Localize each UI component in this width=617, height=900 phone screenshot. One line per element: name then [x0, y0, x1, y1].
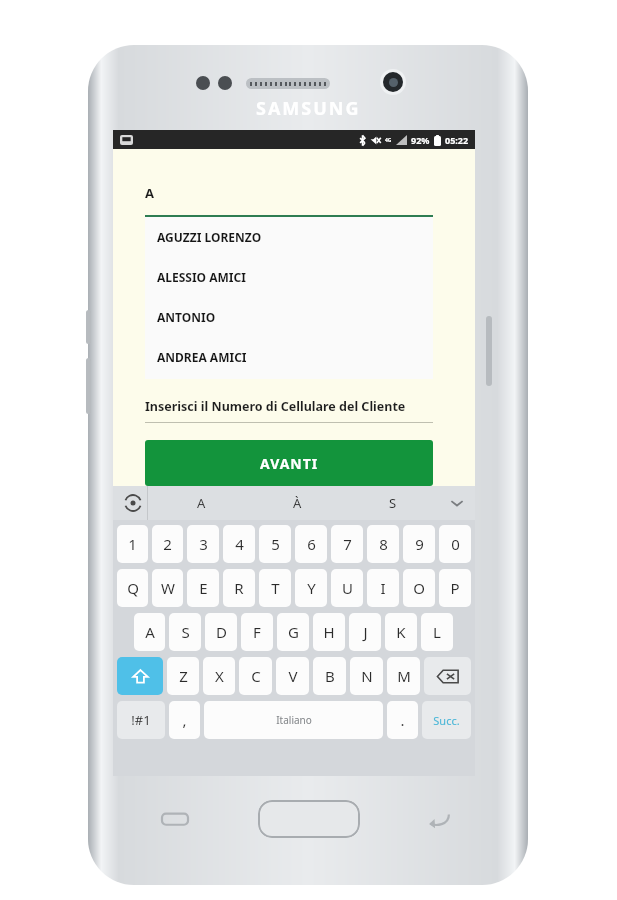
- button[interactable]: 9: [403, 525, 435, 563]
- staticText: ,: [182, 710, 187, 730]
- button[interactable]: 2: [152, 525, 183, 563]
- staticText: !#1: [131, 711, 151, 729]
- staticText: Z: [179, 666, 188, 686]
- button[interactable]: S: [169, 613, 201, 651]
- button[interactable]: Back: [428, 808, 450, 830]
- staticText: P: [450, 578, 460, 598]
- staticText: ALESSIO AMICI: [157, 269, 246, 285]
- button[interactable]: 0: [439, 525, 471, 563]
- button[interactable]: AVANTI: [145, 440, 433, 486]
- staticText: X: [215, 666, 224, 686]
- button[interactable]: B: [313, 657, 346, 695]
- staticText: ANTONIO: [157, 309, 216, 325]
- button[interactable]: Expand suggestions: [449, 495, 465, 511]
- button[interactable]: 5: [259, 525, 291, 563]
- staticText: Y: [307, 578, 316, 598]
- staticText: I: [380, 578, 386, 598]
- staticText: E: [199, 578, 208, 598]
- button[interactable]: H: [313, 613, 345, 651]
- button[interactable]: T: [259, 569, 291, 607]
- button[interactable]: !#1: [117, 701, 165, 739]
- staticText: 0: [451, 534, 460, 554]
- staticText: R: [234, 578, 244, 598]
- button[interactable]: Shift: [117, 657, 163, 695]
- button[interactable]: G: [277, 613, 309, 651]
- button[interactable]: Y: [295, 569, 327, 607]
- staticText: H: [323, 622, 335, 642]
- staticText: B: [325, 666, 335, 686]
- staticText: Succ.: [433, 713, 460, 728]
- button[interactable]: S: [345, 486, 441, 520]
- button[interactable]: F: [241, 613, 273, 651]
- button[interactable]: Z: [167, 657, 199, 695]
- button[interactable]: L: [421, 613, 453, 651]
- button[interactable]: J: [349, 613, 381, 651]
- button[interactable]: ANTONIO: [145, 297, 433, 337]
- staticText: 7: [343, 534, 352, 554]
- button[interactable]: 6: [295, 525, 327, 563]
- button[interactable]: À: [249, 486, 345, 520]
- button[interactable]: M: [387, 657, 420, 695]
- staticText: AGUZZI LORENZO: [157, 229, 262, 245]
- button[interactable]: 7: [331, 525, 363, 563]
- staticText: T: [271, 578, 280, 598]
- staticText: Q: [127, 578, 139, 598]
- button[interactable]: A: [153, 486, 249, 520]
- staticText: 05:22: [445, 134, 469, 146]
- button[interactable]: W: [152, 569, 183, 607]
- button[interactable]: Recents: [162, 810, 188, 828]
- button[interactable]: 8: [367, 525, 399, 563]
- staticText: À: [293, 494, 302, 512]
- staticText: N: [361, 666, 373, 686]
- button[interactable]: ALESSIO AMICI: [145, 257, 433, 297]
- button[interactable]: I: [367, 569, 399, 607]
- staticText: .: [400, 710, 405, 730]
- button[interactable]: O: [403, 569, 435, 607]
- button[interactable]: E: [187, 569, 219, 607]
- staticText: L: [433, 622, 441, 642]
- staticText: J: [363, 622, 368, 642]
- staticText: S: [181, 622, 190, 642]
- button[interactable]: Voice input: [123, 493, 143, 513]
- staticText: 4: [235, 534, 244, 554]
- staticText: F: [253, 622, 261, 642]
- button[interactable]: Q: [117, 569, 148, 607]
- staticText: 5: [271, 534, 280, 554]
- button[interactable]: ,: [169, 701, 200, 739]
- staticText: 92%: [411, 134, 430, 146]
- button[interactable]: Succ.: [422, 701, 471, 739]
- button[interactable]: 4: [223, 525, 255, 563]
- button[interactable]: U: [331, 569, 363, 607]
- button[interactable]: 1: [117, 525, 148, 563]
- staticText: U: [342, 578, 353, 598]
- button[interactable]: .: [387, 701, 418, 739]
- staticText: V: [288, 666, 298, 686]
- staticText: Inserisci il Numero di Cellulare del Cli…: [145, 398, 435, 415]
- button[interactable]: K: [385, 613, 417, 651]
- button[interactable]: ANDREA AMICI: [145, 337, 433, 377]
- staticText: C: [251, 666, 261, 686]
- staticText: 4G: [385, 137, 392, 144]
- button[interactable]: A: [134, 613, 165, 651]
- staticText: AVANTI: [260, 454, 319, 473]
- button[interactable]: C: [239, 657, 272, 695]
- button[interactable]: X: [203, 657, 235, 695]
- staticText: 6: [307, 534, 316, 554]
- staticText: O: [413, 578, 425, 598]
- staticText: A: [197, 494, 206, 512]
- staticText: 3: [199, 534, 208, 554]
- button[interactable]: Italiano: [204, 701, 383, 739]
- staticText: 9: [415, 534, 424, 554]
- button[interactable]: 3: [187, 525, 219, 563]
- button[interactable]: N: [350, 657, 383, 695]
- staticText: ANDREA AMICI: [157, 349, 247, 365]
- button[interactable]: R: [223, 569, 255, 607]
- button[interactable]: P: [439, 569, 471, 607]
- staticText: S: [389, 494, 397, 512]
- button[interactable]: Home: [258, 800, 360, 838]
- button[interactable]: Backspace: [424, 657, 471, 695]
- button[interactable]: AGUZZI LORENZO: [145, 217, 433, 257]
- staticText: W: [161, 578, 175, 598]
- button[interactable]: V: [276, 657, 309, 695]
- button[interactable]: D: [205, 613, 237, 651]
